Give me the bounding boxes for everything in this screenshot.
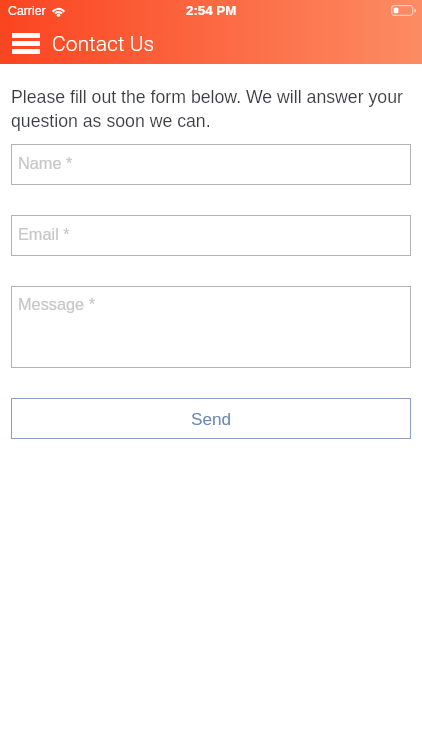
staticText: Message * (18, 295, 95, 313)
button[interactable]: Send (11, 398, 411, 439)
staticText: Please fill out the form below. We will … (11, 87, 413, 130)
button[interactable]: Message * (11, 286, 411, 368)
staticText: Contact Us (52, 32, 155, 54)
staticText: Name * (18, 154, 73, 172)
staticText: 2:54 PM (186, 3, 237, 18)
button[interactable]: Email * (11, 215, 411, 256)
staticText: Send (191, 409, 232, 428)
staticText: Carrier (8, 4, 46, 18)
staticText: Email * (18, 225, 70, 243)
button[interactable]: Name * (11, 144, 411, 185)
button[interactable]: Menu (12, 33, 40, 54)
